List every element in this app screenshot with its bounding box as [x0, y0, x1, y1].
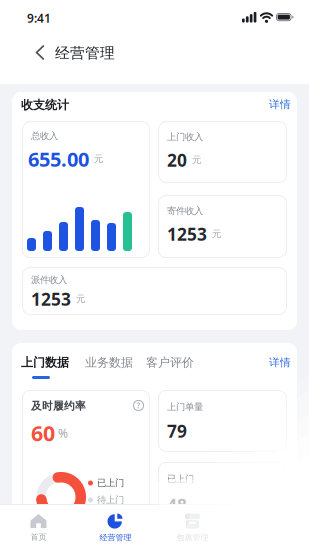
button[interactable]: 包裹管理 [0, 0, 309, 550]
button[interactable]: 经营管理 [0, 0, 309, 550]
button[interactable]: 详情 [0, 0, 309, 550]
staticText: 业务数据 [85, 355, 133, 370]
staticText: 48 [167, 493, 187, 516]
button[interactable]: 客户评价 [0, 0, 309, 550]
staticText: 经营管理 [55, 44, 115, 62]
staticText: 首页 [30, 532, 46, 542]
staticText: 9:41 [27, 10, 51, 26]
staticText: 客户评价 [146, 355, 194, 370]
staticText: 上门单量 [167, 401, 203, 413]
staticText: 派件收入 [31, 274, 67, 286]
staticText: ? [136, 400, 140, 411]
staticText: 待上门 [97, 494, 124, 506]
staticText: 详情 [269, 98, 291, 111]
staticText: 总收入 [31, 130, 58, 142]
staticText: 已上门 [97, 477, 124, 489]
staticText: 20 [167, 148, 187, 171]
staticText: 1253 [31, 287, 71, 310]
button[interactable]: 业务数据 [0, 0, 309, 550]
staticText: 上门数据 [21, 355, 69, 370]
staticText: 元 [192, 154, 201, 166]
staticText: 79 [167, 419, 187, 442]
staticText: 元 [94, 153, 103, 165]
button[interactable]: Back [0, 0, 309, 550]
staticText: 上门收入 [167, 131, 203, 143]
staticText: 收支统计 [21, 98, 69, 112]
button[interactable]: 说明 [0, 0, 309, 550]
staticText: 60 [31, 419, 55, 447]
button[interactable]: 首页 [0, 0, 309, 550]
staticText: 655.00 [28, 146, 89, 172]
staticText: 及时履约率 [31, 399, 86, 412]
staticText: 详情 [269, 356, 291, 369]
staticText: 寄件收入 [167, 205, 203, 217]
staticText: 元 [212, 228, 221, 240]
staticText: 包裹管理 [176, 533, 208, 542]
staticText: 已上门 [167, 473, 194, 485]
button[interactable]: 上门数据 [0, 0, 309, 550]
button[interactable]: 我的 [0, 0, 309, 550]
button[interactable]: 详情 [0, 0, 309, 550]
staticText: % [58, 425, 68, 441]
staticText: 经营管理 [99, 533, 131, 542]
staticText: 1253 [167, 222, 207, 245]
staticText: 元 [76, 293, 85, 305]
